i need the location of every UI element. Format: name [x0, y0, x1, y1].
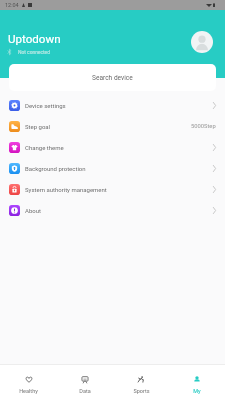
button[interactable]: Background protection — [0, 158, 225, 179]
button[interactable]: My — [169, 365, 225, 400]
staticText: Sports — [133, 388, 150, 394]
button[interactable]: Step goal — [0, 116, 225, 137]
button[interactable]: Profile — [191, 31, 213, 53]
staticText: 5000Step — [191, 123, 216, 130]
button[interactable]: About — [0, 200, 225, 221]
staticText: 12:04 — [5, 2, 19, 8]
button[interactable]: Data — [57, 365, 113, 400]
button[interactable]: Device settings — [0, 95, 225, 116]
staticText: Data — [79, 388, 91, 394]
staticText: System authority management — [25, 186, 107, 193]
staticText: Step goal — [25, 123, 51, 130]
staticText: About — [25, 207, 41, 214]
staticText: Not connected — [18, 49, 50, 55]
button[interactable]: Search device — [9, 64, 216, 91]
staticText: Uptodown — [8, 32, 61, 46]
button[interactable]: System authority management — [0, 179, 225, 200]
staticText: Change theme — [25, 144, 64, 151]
button[interactable]: Sports — [113, 365, 169, 400]
staticText: Search device — [92, 74, 133, 82]
button[interactable]: Healthy — [0, 365, 57, 400]
staticText: Device settings — [25, 102, 66, 109]
staticText: My — [193, 388, 201, 394]
button[interactable]: Change theme — [0, 137, 225, 158]
staticText: Healthy — [19, 388, 38, 394]
staticText: Background protection — [25, 165, 86, 172]
